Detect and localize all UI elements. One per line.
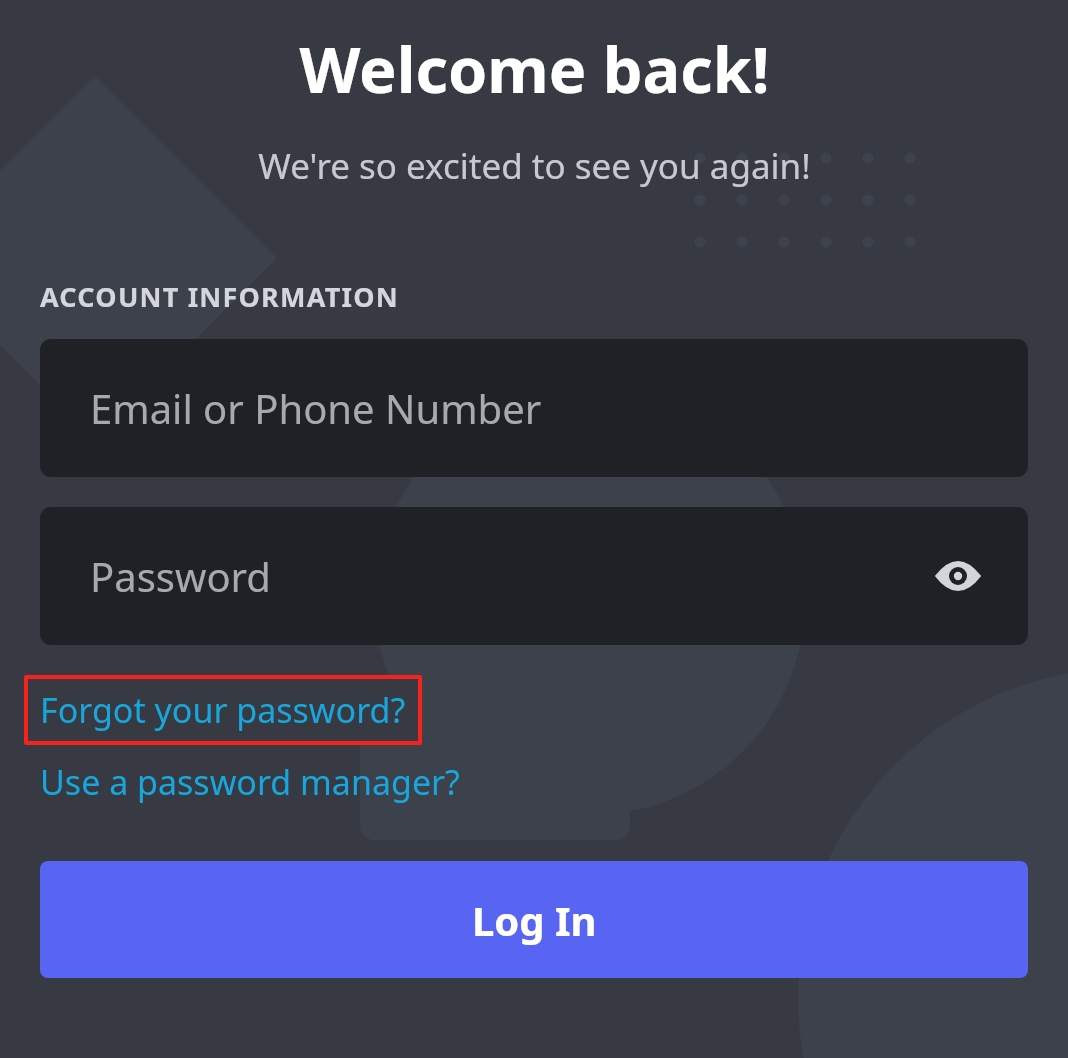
staticText: Forgot your password?: [40, 687, 406, 733]
button[interactable]: Log In: [40, 861, 1028, 978]
button[interactable]: Use a password manager?: [40, 759, 460, 805]
staticText: Log In: [472, 893, 597, 947]
staticText: Welcome back!: [299, 26, 770, 112]
staticText: Use a password manager?: [40, 759, 460, 805]
button[interactable]: Password: [40, 507, 1028, 645]
button[interactable]: Forgot your password?: [28, 679, 418, 741]
staticText: Password: [90, 549, 271, 603]
staticText: Email or Phone Number: [90, 381, 542, 435]
button[interactable]: Show password: [926, 544, 990, 608]
staticText: ACCOUNT INFORMATION: [40, 278, 399, 315]
button[interactable]: Email or Phone Number: [40, 339, 1028, 477]
staticText: We're so excited to see you again!: [258, 142, 811, 190]
